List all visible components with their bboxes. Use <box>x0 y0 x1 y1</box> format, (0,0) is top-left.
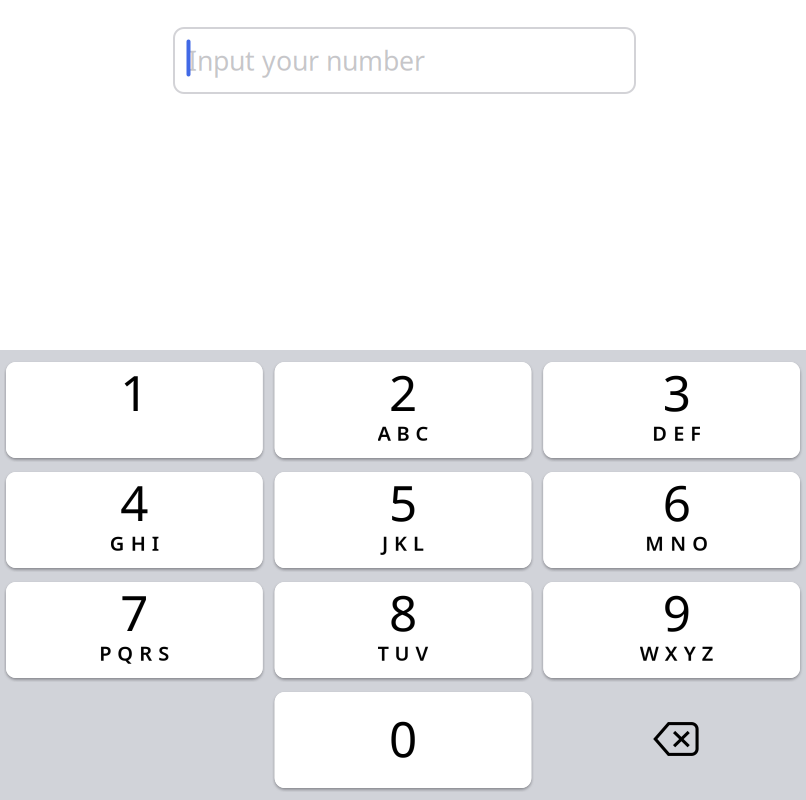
button[interactable]: 2 <box>275 362 531 458</box>
button[interactable]: 5 <box>275 472 531 568</box>
staticText: 2 <box>389 359 417 425</box>
staticText: ABC <box>377 420 428 446</box>
staticText: GHI <box>110 530 159 556</box>
button[interactable]: Input your number <box>174 28 635 93</box>
button[interactable]: Delete <box>543 692 800 788</box>
staticText: TUV <box>377 640 428 666</box>
staticText: JKL <box>382 530 424 556</box>
button[interactable]: 9 <box>543 582 800 678</box>
staticText: 4 <box>120 469 148 535</box>
staticText: PQRS <box>99 640 169 666</box>
button[interactable]: 6 <box>543 472 800 568</box>
staticText: 8 <box>389 579 417 645</box>
staticText: 6 <box>663 469 691 535</box>
staticText: Input your number <box>188 43 425 78</box>
button[interactable]: 8 <box>275 582 531 678</box>
staticText: 9 <box>663 579 691 645</box>
staticText: 3 <box>663 359 691 425</box>
button[interactable]: 1 <box>6 362 263 458</box>
staticText: 0 <box>389 705 417 771</box>
button[interactable]: 0 <box>275 692 531 788</box>
button[interactable]: 4 <box>6 472 263 568</box>
staticText: MNO <box>645 530 708 556</box>
staticText: 5 <box>389 469 417 535</box>
button[interactable]: 7 <box>6 582 263 678</box>
staticText: 7 <box>120 579 148 645</box>
staticText: DEF <box>652 420 701 446</box>
button[interactable]: 3 <box>543 362 800 458</box>
staticText: WXYZ <box>640 640 714 666</box>
staticText: 1 <box>120 359 148 425</box>
